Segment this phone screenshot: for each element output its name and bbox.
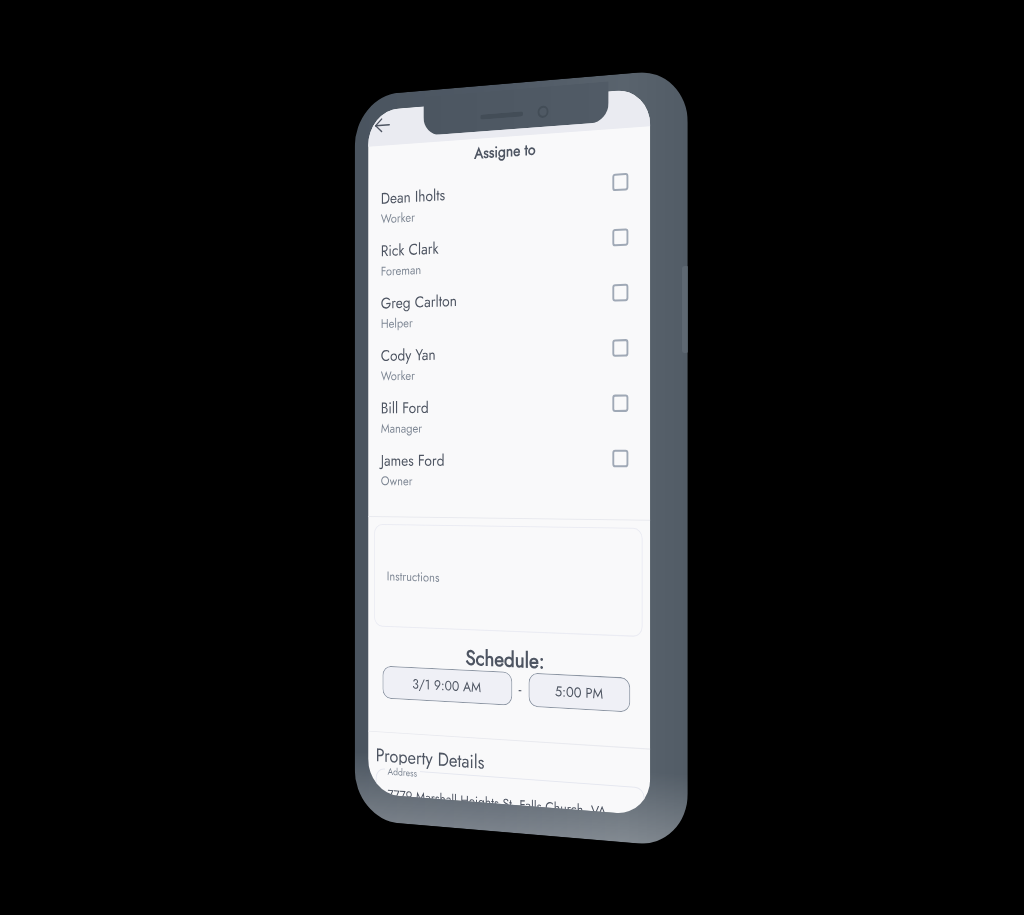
staticText: Schedule:	[368, 639, 650, 682]
button[interactable]: Back	[369, 109, 396, 142]
staticText: James Ford	[381, 449, 445, 472]
staticText: Worker	[381, 366, 416, 385]
staticText: Address	[388, 764, 417, 780]
staticText: 5:00 PM	[555, 681, 604, 704]
button[interactable]: 7779 Marshall Heights St, Falls Church, …	[376, 768, 644, 815]
staticText: 3/1 9:00 AM	[412, 674, 481, 697]
staticText: Bill Ford	[381, 396, 429, 419]
staticText: Worker	[381, 208, 416, 228]
button[interactable]: Dean Iholts	[368, 170, 650, 240]
staticText: Property Details	[376, 742, 485, 776]
staticText: Greg Carlton	[381, 289, 457, 314]
staticText: Instructions	[387, 567, 440, 587]
staticText: Owner	[381, 472, 413, 490]
button[interactable]: Greg Carlton	[368, 282, 650, 345]
staticText: Helper	[381, 313, 413, 333]
button[interactable]: 3/1 9:00 AM	[382, 666, 512, 706]
staticText: Dean Iholts	[381, 183, 446, 210]
button[interactable]: Bill Ford	[368, 393, 650, 449]
staticText: Manager	[381, 419, 423, 438]
button[interactable]: Cody Yan	[368, 337, 650, 397]
staticText: 7779 Marshall Heights St, Falls Church, …	[388, 785, 645, 815]
button[interactable]: James Ford	[368, 449, 650, 504]
button[interactable]: Rick Clark	[368, 226, 650, 293]
staticText: Foreman	[381, 260, 422, 281]
button[interactable]: Instructions	[374, 524, 643, 637]
staticText: Rick Clark	[381, 237, 439, 262]
staticText: -	[519, 678, 522, 700]
button[interactable]: 5:00 PM	[528, 673, 630, 712]
staticText: Assigne to	[368, 129, 650, 171]
staticText: Cody Yan	[381, 343, 436, 367]
